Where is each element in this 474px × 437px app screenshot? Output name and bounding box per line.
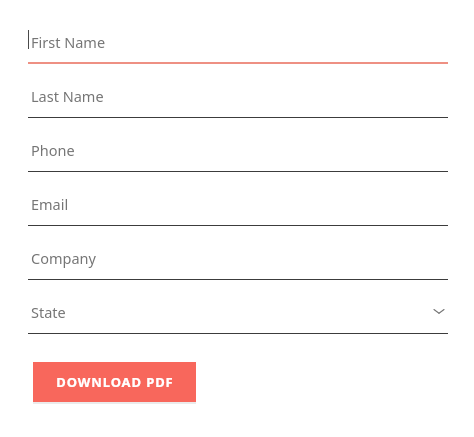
other: Open state dropdown [433,305,445,317]
staticText: Email [31,194,69,214]
button[interactable]: DOWNLOAD PDF [33,362,196,402]
button[interactable]: Company [28,248,448,280]
button[interactable]: State [28,302,448,334]
button[interactable]: First Name [28,32,448,64]
staticText: Company [31,248,96,268]
staticText: DOWNLOAD PDF [56,373,174,391]
staticText: Phone [31,140,75,160]
button[interactable]: Phone [28,140,448,172]
staticText: Last Name [31,86,104,106]
staticText: First Name [31,32,106,52]
button[interactable]: Last Name [28,86,448,118]
staticText: State [31,302,66,322]
button[interactable]: Email [28,194,448,226]
